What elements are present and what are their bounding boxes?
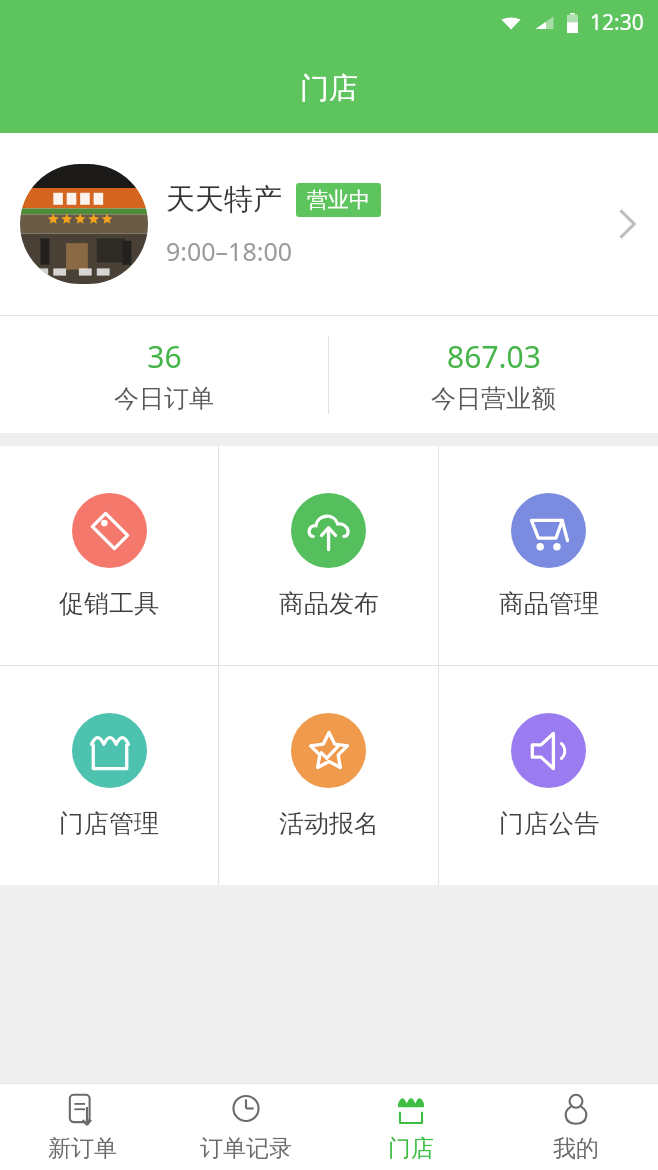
button[interactable]: 867.03 <box>329 316 658 433</box>
staticText: 今日订单 <box>114 383 214 414</box>
staticText: 我的 <box>553 1134 599 1163</box>
staticText: 12:30 <box>590 8 644 37</box>
button[interactable]: 36 <box>0 316 328 433</box>
button[interactable]: 商品管理 <box>439 446 658 665</box>
button[interactable]: 新订单 <box>0 1084 164 1170</box>
staticText: 9:00–18:00 <box>166 234 293 268</box>
staticText: 商品发布 <box>279 588 379 619</box>
staticText: 活动报名 <box>279 808 379 839</box>
staticText: 订单记录 <box>200 1134 292 1163</box>
staticText: 36 <box>147 336 182 377</box>
staticText: 门店管理 <box>59 808 159 839</box>
button[interactable]: 天天特产 <box>0 133 658 315</box>
button[interactable]: 商品发布 <box>219 446 438 665</box>
staticText: 门店 <box>300 70 358 107</box>
staticText: 营业中 <box>307 187 370 213</box>
button[interactable]: 订单记录 <box>164 1084 328 1170</box>
other: Store details <box>614 206 640 242</box>
button[interactable]: 门店公告 <box>439 666 658 885</box>
button[interactable]: 我的 <box>493 1084 658 1170</box>
staticText: 门店公告 <box>499 808 599 839</box>
staticText: 门店 <box>388 1134 434 1163</box>
staticText: 促销工具 <box>59 588 159 619</box>
staticText: 天天特产 <box>166 181 282 218</box>
button[interactable]: 促销工具 <box>0 446 218 665</box>
button[interactable]: 活动报名 <box>219 666 438 885</box>
staticText: 今日营业额 <box>431 383 556 414</box>
staticText: 新订单 <box>48 1134 117 1163</box>
staticText: 商品管理 <box>499 588 599 619</box>
staticText: 867.03 <box>447 336 541 377</box>
button[interactable]: 门店管理 <box>0 666 218 885</box>
button[interactable]: 门店 <box>328 1084 493 1170</box>
